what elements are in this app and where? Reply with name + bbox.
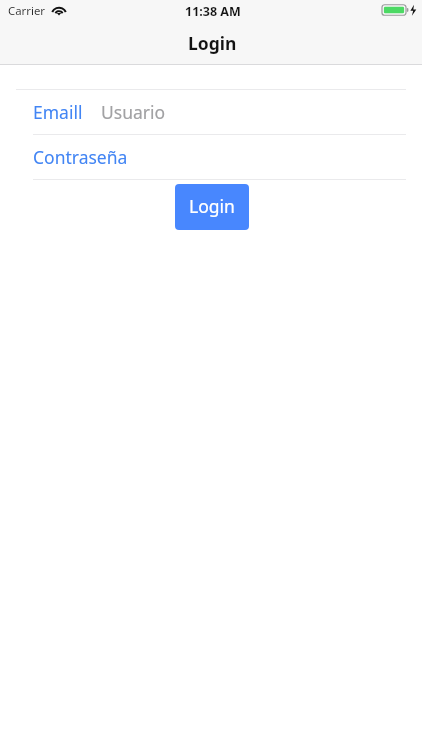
button[interactable]: Login	[175, 184, 249, 230]
staticText: Login	[188, 31, 237, 55]
staticText: Login	[189, 194, 235, 218]
staticText: Emaill	[33, 100, 83, 124]
other: Wi-Fi signal	[51, 0, 67, 16]
staticText: Carrier	[8, 3, 46, 19]
button[interactable]: Emaill	[0, 90, 422, 134]
other: Battery charging	[382, 4, 418, 16]
staticText: Usuario	[101, 100, 166, 124]
button[interactable]: Contraseña	[0, 135, 422, 179]
staticText: Contraseña	[33, 145, 128, 169]
staticText: 11:38 AM	[185, 3, 241, 20]
